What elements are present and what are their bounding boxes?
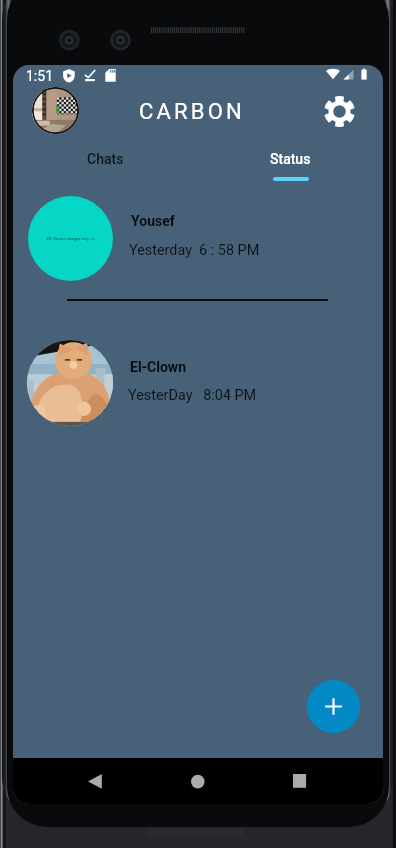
- button[interactable]: Recents: [290, 771, 310, 791]
- staticText: YesterDay 8:04 PM: [128, 387, 257, 404]
- button[interactable]: Profile: [32, 87, 79, 134]
- button[interactable]: Settings: [322, 94, 357, 129]
- staticText: VD: Vector images only +/-: [46, 236, 96, 241]
- staticText: Chats: [87, 151, 124, 167]
- button[interactable]: VD: Vector images only +/-: [28, 190, 153, 287]
- button[interactable]: Home: [188, 772, 208, 792]
- button[interactable]: Back: [86, 772, 104, 791]
- staticText: Yousef: [131, 213, 175, 229]
- button[interactable]: [27, 334, 153, 432]
- button[interactable]: Status: [198, 145, 383, 183]
- button[interactable]: New status: [307, 680, 360, 733]
- staticText: CARBON: [139, 99, 245, 125]
- staticText: El-Clown: [130, 359, 186, 375]
- staticText: 1:51: [26, 68, 53, 84]
- staticText: Status: [270, 151, 311, 167]
- button[interactable]: Chats: [13, 145, 198, 183]
- staticText: Yesterday 6 : 58 PM: [129, 242, 260, 259]
